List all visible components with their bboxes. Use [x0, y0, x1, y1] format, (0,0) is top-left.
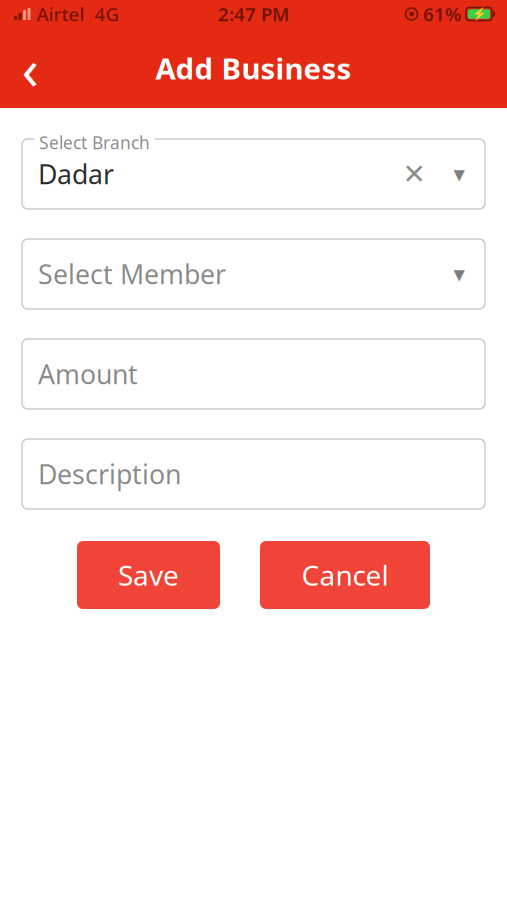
- button[interactable]: Cancel: [260, 541, 430, 609]
- staticText: ⚡: [471, 7, 486, 21]
- staticText: ‹: [21, 31, 38, 105]
- staticText: Description: [38, 456, 181, 492]
- staticText: ✕: [402, 158, 425, 190]
- button[interactable]: Description: [22, 439, 485, 509]
- staticText: Select Branch: [39, 131, 150, 154]
- staticText: ▾: [453, 261, 464, 287]
- staticText: 61%: [423, 2, 461, 26]
- staticText: Cancel: [301, 556, 388, 594]
- button[interactable]: Select Member: [22, 239, 485, 309]
- button[interactable]: Save: [77, 541, 220, 609]
- staticText: ▾: [453, 161, 464, 187]
- staticText: Amount: [38, 356, 138, 392]
- button[interactable]: Back: [8, 46, 52, 90]
- staticText: Dadar: [38, 156, 114, 192]
- staticText: Add Business: [155, 48, 351, 87]
- staticText: Select Member: [38, 256, 226, 292]
- button[interactable]: Clear: [401, 161, 427, 187]
- staticText: 2:47 PM: [218, 2, 289, 26]
- staticText: Save: [118, 556, 179, 594]
- staticText: Airtel: [36, 2, 84, 26]
- button[interactable]: Amount: [22, 339, 485, 409]
- staticText: 4G: [94, 2, 119, 26]
- button[interactable]: Open Select Branch picker: [427, 164, 469, 184]
